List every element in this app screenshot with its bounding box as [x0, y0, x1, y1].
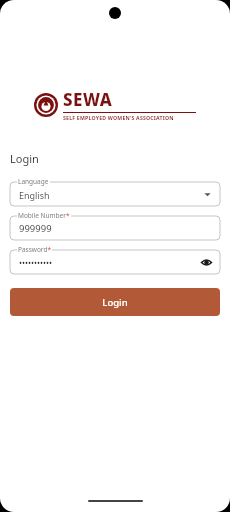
button[interactable]: Password*: [10, 245, 220, 274]
staticText: 999999: [19, 222, 52, 235]
staticText: SELF EMPLOYED WOMEN'S ASSOCIATION: [63, 114, 174, 121]
button[interactable]: Mobile Number*: [10, 211, 220, 240]
staticText: Password*: [18, 245, 51, 254]
staticText: SEWA: [63, 88, 113, 111]
staticText: Mobile Number*: [18, 211, 70, 220]
staticText: Language: [18, 177, 49, 186]
button[interactable]: Show password: [200, 256, 213, 269]
staticText: English: [19, 189, 50, 201]
staticText: Login: [10, 151, 39, 166]
button[interactable]: Open language dropdown: [201, 188, 213, 200]
button[interactable]: Language: [10, 177, 220, 206]
staticText: Login: [102, 296, 128, 309]
staticText: •••••••••••: [19, 257, 53, 268]
button[interactable]: Login: [10, 288, 220, 316]
